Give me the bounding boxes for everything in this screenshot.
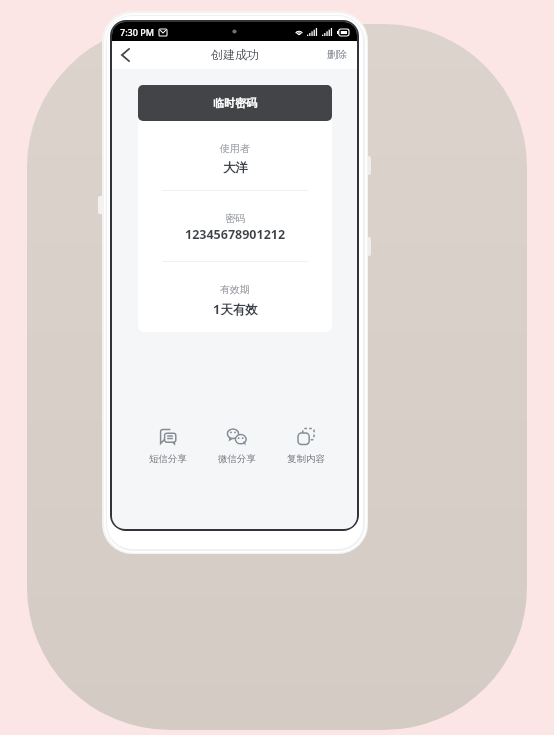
button[interactable]: 删除 xyxy=(317,43,357,68)
staticText: 1天有效 xyxy=(213,301,258,318)
staticText: 大洋 xyxy=(223,160,248,176)
staticText: 密码 xyxy=(225,212,245,225)
staticText: 7:30 PM xyxy=(120,26,154,38)
staticText: 短信分享 xyxy=(149,453,187,465)
staticText: 使用者 xyxy=(220,142,250,155)
staticText: 有效期 xyxy=(220,283,250,296)
button[interactable]: 微信分享 xyxy=(206,427,268,465)
staticText: 复制内容 xyxy=(287,453,325,465)
staticText: 删除 xyxy=(327,48,347,61)
staticText: 微信分享 xyxy=(218,453,256,465)
button[interactable]: 短信分享 xyxy=(137,427,199,465)
staticText: 12345678901212 xyxy=(185,226,286,243)
button[interactable]: Back xyxy=(112,41,138,69)
staticText: 创建成功 xyxy=(211,47,259,62)
staticText: 临时密码 xyxy=(213,96,257,110)
button[interactable]: 复制内容 xyxy=(275,427,337,465)
